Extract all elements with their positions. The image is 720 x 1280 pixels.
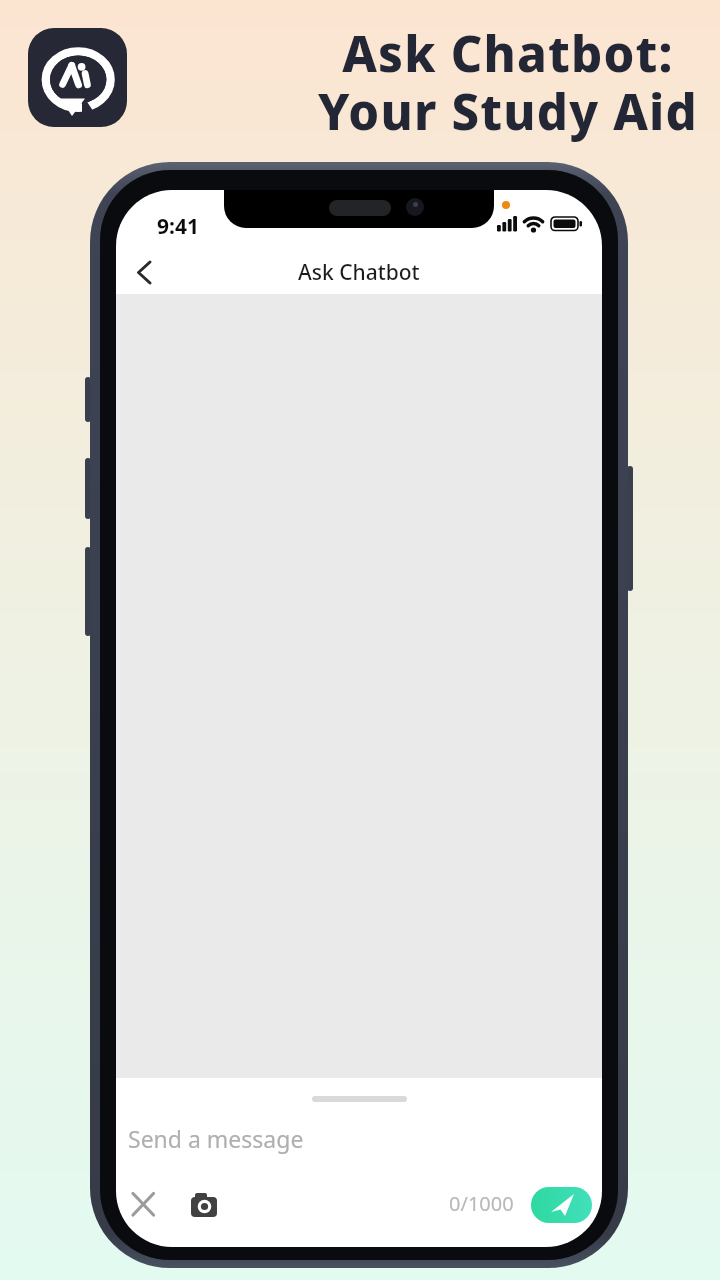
button[interactable]: Ask Chatbot: [298, 258, 420, 287]
button[interactable]: [186, 1188, 222, 1224]
staticText: Send a message: [128, 1123, 304, 1154]
button[interactable]: [28, 28, 127, 127]
staticText: 0/1000: [449, 1190, 514, 1217]
button[interactable]: [116, 1106, 602, 1172]
button[interactable]: [531, 1187, 592, 1223]
button[interactable]: [128, 1188, 160, 1220]
staticText: Ask Chatbot: Your Study Aid: [318, 20, 698, 144]
button[interactable]: [124, 248, 168, 294]
staticText: 9:41: [157, 212, 199, 241]
